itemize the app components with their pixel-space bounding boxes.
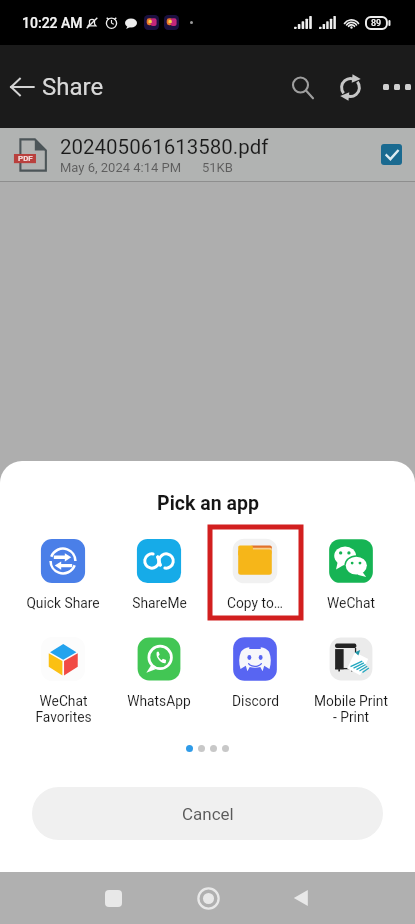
button[interactable]: Back [277, 874, 325, 922]
staticText: WeChat Favorites [35, 693, 92, 725]
staticText: May 6, 2024 4:14 PM [60, 160, 182, 175]
button[interactable]: PDF [0, 128, 415, 181]
staticText: Cancel [182, 804, 234, 824]
staticText: 202405061613580.pdf [60, 135, 269, 159]
button[interactable]: Selected [381, 144, 402, 165]
button[interactable]: ShareMe [114, 531, 204, 611]
staticText: 89 [371, 18, 382, 29]
button[interactable]: Refresh [326, 63, 374, 111]
button[interactable]: Quick Share [18, 531, 108, 611]
button[interactable]: Discord [210, 629, 300, 709]
button[interactable]: Search [278, 63, 326, 111]
button[interactable]: More options [373, 63, 415, 111]
button[interactable]: Home [184, 874, 232, 922]
staticText: 51KB [202, 160, 233, 175]
button[interactable]: Cancel [32, 787, 383, 840]
button[interactable]: Copy to… [210, 531, 300, 611]
staticText: Quick Share [26, 595, 100, 611]
staticText: Copy to… [227, 595, 283, 611]
button[interactable]: WeChat Favorites [18, 629, 108, 725]
staticText: WhatsApp [127, 693, 191, 709]
button[interactable]: Back [2, 59, 104, 115]
button[interactable]: WhatsApp [114, 629, 204, 709]
staticText: 10:22 AM [22, 15, 83, 31]
staticText: Discord [232, 693, 279, 709]
button[interactable]: Mobile Print - Print [306, 629, 396, 725]
staticText: Share [42, 73, 104, 101]
button[interactable]: WeChat [306, 531, 396, 611]
other: Back [2, 59, 42, 115]
staticText: WeChat [327, 595, 375, 611]
staticText: ShareMe [132, 595, 187, 611]
staticText: Mobile Print - Print [314, 693, 388, 725]
staticText: Pick an app [157, 492, 259, 515]
staticText: PDF [18, 154, 33, 163]
button[interactable]: Recents [89, 874, 137, 922]
